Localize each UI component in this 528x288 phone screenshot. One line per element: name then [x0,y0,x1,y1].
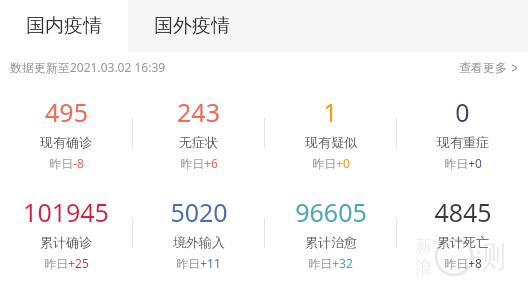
staticText: 昨日+0 [444,155,482,171]
button[interactable]: 96605 [265,195,396,271]
staticText: 境外输入 [173,234,225,250]
staticText: 无症状 [179,134,218,150]
staticText: 查看更多 [459,60,507,75]
staticText: 243 [177,95,220,129]
staticText: 累计治愈 [305,234,357,250]
button[interactable]: 4845 [397,195,528,271]
staticText: 96605 [295,195,367,229]
staticText: 浪 [415,257,432,278]
button[interactable]: 5020 [133,195,264,271]
button[interactable]: 查看更多 [459,60,518,75]
staticText: 4845 [434,195,492,229]
staticText: 昨日+25 [44,255,89,271]
button[interactable]: 国内疫情 [0,0,128,52]
staticText: 0 [455,95,470,129]
button[interactable]: 1 [265,95,396,171]
staticText: 国内疫情 [26,14,102,38]
staticText: 新 [415,236,432,257]
staticText: 昨日+32 [308,255,353,271]
button[interactable]: 国外疫情 [128,0,256,52]
button[interactable]: 0 [397,95,528,171]
staticText: 现有重症 [437,134,489,150]
button[interactable]: 101945 [0,195,132,271]
staticText: 5020 [170,195,228,229]
staticText: 昨日+11 [176,255,221,271]
staticText: 累计死亡 [437,234,489,250]
staticText: 现有疑似 [305,134,357,150]
button[interactable]: 243 [133,95,264,171]
staticText: 昨日+0 [312,155,350,171]
staticText: 昨日+8 [444,255,482,271]
staticText: 数据更新至2021.03.02 16:39 [10,59,166,75]
staticText: 国外疫情 [154,14,230,38]
staticText: 昨日+6 [180,155,218,171]
staticText: 现有确诊 [40,134,92,150]
staticText: 累计确诊 [40,234,92,250]
staticText: 测 [476,238,506,276]
staticText: 101945 [23,195,109,229]
button[interactable]: 495 [0,95,132,171]
staticText: 昨日-8 [49,155,84,171]
staticText: 1 [323,95,338,129]
staticText: 495 [45,95,88,129]
